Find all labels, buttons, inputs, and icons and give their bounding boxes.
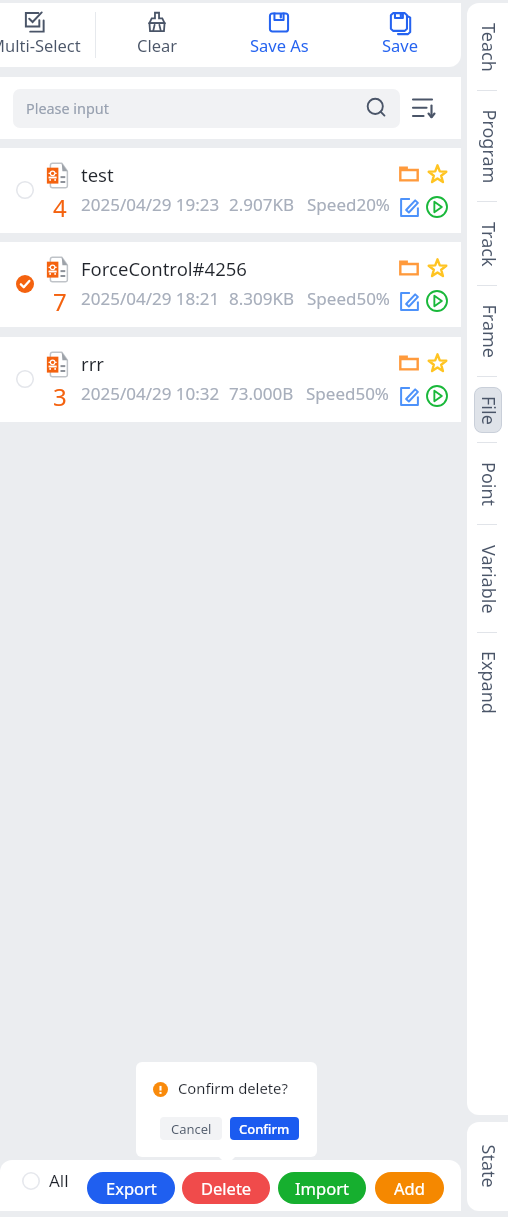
button[interactable]: Select [16,370,34,388]
staticText: 73.000B [229,382,294,405]
button[interactable]: Frame [474,296,502,367]
button[interactable]: Edit [399,197,420,218]
staticText: 8.309KB [229,287,295,310]
staticText: 7 [53,285,67,318]
button[interactable]: Favorite [427,163,448,184]
button[interactable]: Import [278,1172,366,1204]
staticText: All [49,1169,69,1192]
button[interactable]: Edit [399,386,420,407]
staticText: Speed20% [307,193,390,216]
staticText: Clear [137,34,178,56]
button[interactable]: Run [426,196,448,218]
button[interactable]: Cancel [160,1117,222,1140]
staticText: rrr [81,351,104,376]
button[interactable]: Save [344,3,456,67]
staticText: 4 [53,191,67,224]
button[interactable]: File [474,387,502,433]
button[interactable]: Teach [474,13,502,81]
button[interactable]: Move to folder [398,257,420,279]
button[interactable]: Clear [101,3,213,67]
staticText: Speed50% [307,287,390,310]
button[interactable]: Move to folder [398,163,420,185]
staticText: 2025/04/29 10:32 [81,382,220,405]
button[interactable]: Select [16,275,34,293]
button[interactable]: Track [474,212,502,276]
staticText: Delete [201,1177,252,1199]
button[interactable]: Export [87,1172,175,1204]
button[interactable]: Select [0,337,461,422]
staticText: Import [295,1177,349,1199]
button[interactable]: Run [426,385,448,407]
staticText: Save [382,34,419,56]
staticText: Export [106,1177,157,1199]
button[interactable]: Save As [223,3,335,67]
staticText: Multi-Select [0,34,81,56]
staticText: State [475,1144,500,1188]
staticText: Expand [476,651,501,714]
button[interactable]: Select [16,181,34,199]
button[interactable]: Variable [474,535,502,623]
staticText: test [81,162,114,187]
button[interactable]: Select [0,242,461,327]
staticText: Teach [476,23,501,72]
button[interactable]: Point [474,453,502,515]
button[interactable]: Add [375,1172,444,1204]
button[interactable]: Program [474,101,502,192]
staticText: Point [476,462,501,507]
button[interactable]: Select [0,148,461,233]
button[interactable]: Favorite [427,352,448,373]
staticText: Save As [250,34,309,56]
button[interactable]: State [467,1122,508,1211]
staticText: Add [394,1177,425,1199]
button[interactable]: Delete [182,1172,270,1204]
staticText: Confirm delete? [178,1078,288,1098]
staticText: Track [476,222,501,267]
button[interactable]: Favorite [427,257,448,278]
staticText: Variable [476,545,501,614]
staticText: 2025/04/29 19:23 [81,193,220,216]
staticText: Confirm [239,1120,290,1138]
staticText: File [476,396,501,425]
button[interactable]: All [22,1169,69,1192]
button[interactable]: Sort [408,92,441,125]
button[interactable]: Run [426,290,448,312]
button[interactable]: Move to folder [398,352,420,374]
staticText: 2025/04/29 18:21 [81,287,220,310]
button[interactable]: Confirm [230,1117,299,1140]
staticText: 2.907KB [229,193,295,216]
staticText: Cancel [171,1120,212,1138]
staticText: Frame [476,304,501,358]
staticText: Speed50% [306,382,389,405]
button[interactable]: Edit [399,291,420,312]
staticText: ForceControl#4256 [81,256,247,281]
button[interactable]: Multi-Select [0,3,91,67]
button[interactable]: Please input [13,89,400,128]
button[interactable]: Expand [474,643,502,722]
staticText: Please input [26,99,366,119]
staticText: 3 [53,380,67,413]
staticText: Program [476,109,501,183]
